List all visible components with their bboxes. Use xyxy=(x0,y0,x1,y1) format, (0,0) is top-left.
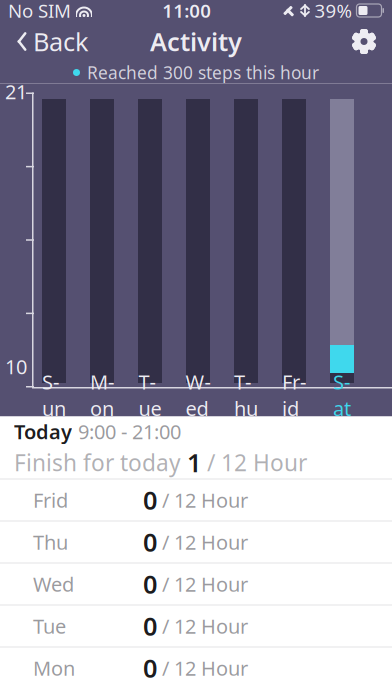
staticText: 11:00 xyxy=(162,0,211,23)
staticText: Sun xyxy=(42,368,66,421)
staticText: 10 xyxy=(5,353,27,380)
staticText: / 12 Hour xyxy=(157,655,248,681)
button[interactable]: Thu xyxy=(0,520,392,562)
staticText: Tue xyxy=(138,368,161,421)
staticText: Frid xyxy=(282,368,306,421)
button[interactable]: Frid xyxy=(0,478,392,520)
staticText: 0 xyxy=(143,525,157,559)
staticText: / 12 Hour xyxy=(157,571,248,597)
staticText: Wed xyxy=(185,368,210,421)
staticText: Mon xyxy=(33,655,75,681)
staticText: 0 xyxy=(143,567,157,601)
button[interactable]: Back xyxy=(6,21,99,61)
staticText: Sat xyxy=(333,368,351,421)
staticText: 21 xyxy=(5,78,27,105)
staticText: No SIM xyxy=(8,0,71,23)
staticText: 1 xyxy=(187,446,201,479)
staticText: / 12 Hour xyxy=(157,613,248,639)
staticText: Thu xyxy=(234,368,258,421)
staticText: Thu xyxy=(33,529,68,555)
staticText: Back xyxy=(33,25,89,58)
button[interactable]: Tue xyxy=(0,604,392,646)
button[interactable]: Settings xyxy=(342,21,386,61)
staticText: Wed xyxy=(33,571,74,597)
staticText: 0 xyxy=(143,483,157,517)
staticText: / 12 Hour xyxy=(201,447,307,477)
staticText: Tue xyxy=(33,613,66,639)
staticText: / 12 Hour xyxy=(157,529,248,555)
staticText: 0 xyxy=(143,609,157,643)
button[interactable]: Wed xyxy=(0,562,392,604)
staticText: Activity xyxy=(150,25,242,58)
staticText: Today xyxy=(14,418,72,445)
staticText: Mon xyxy=(90,368,114,421)
staticText: Finish for today xyxy=(14,447,187,477)
staticText: / 12 Hour xyxy=(157,487,248,513)
staticText: 9:00 - 21:00 xyxy=(78,418,181,445)
button[interactable]: Mon xyxy=(0,646,392,688)
staticText: Frid xyxy=(33,487,68,513)
staticText: Reached 300 steps this hour xyxy=(87,61,319,84)
staticText: 0 xyxy=(143,651,157,685)
staticText: 39% xyxy=(314,0,352,23)
